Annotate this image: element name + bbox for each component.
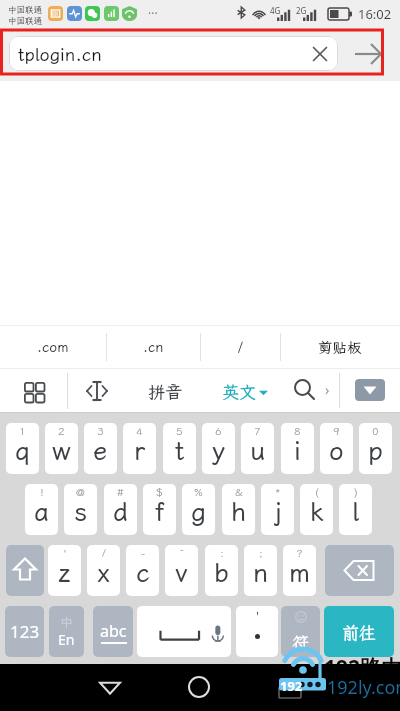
staticText: ( (315, 485, 319, 499)
button[interactable]: 4 (123, 423, 156, 474)
staticText: & (235, 485, 243, 499)
staticText: d (113, 494, 128, 528)
staticText: 3 (97, 424, 104, 438)
button[interactable]: 拼音 (148, 380, 182, 402)
staticText: u (250, 433, 266, 467)
staticText: 123 (10, 620, 40, 643)
button[interactable]: ¯ (165, 545, 198, 596)
button[interactable]: ? (283, 545, 316, 596)
staticText: ! (40, 485, 44, 499)
staticText: 9 (333, 424, 340, 438)
button[interactable]: * (261, 484, 294, 535)
button[interactable]: / (200, 326, 280, 368)
staticText: 中国联通 (8, 4, 43, 15)
staticText: tplogin.cn (18, 42, 102, 66)
staticText: 英文 (222, 380, 256, 402)
button[interactable]: Clear text (306, 40, 334, 68)
button[interactable]: 123 (5, 606, 44, 657)
staticText: En (58, 630, 75, 649)
staticText: 7 (254, 424, 261, 438)
button[interactable]: 9 (320, 423, 353, 474)
staticText: ? (296, 546, 303, 560)
staticText: t (175, 433, 185, 467)
staticText: - (141, 546, 145, 560)
staticText: 2G (296, 5, 307, 16)
staticText: * (275, 485, 281, 499)
button[interactable]: 中 (49, 606, 84, 657)
button[interactable]: / (87, 545, 120, 596)
staticText: 4G (270, 5, 281, 16)
button[interactable]: Punctuation (236, 606, 278, 657)
staticText: g (191, 494, 207, 528)
button[interactable]: Search (293, 378, 317, 402)
staticText: 192 (280, 677, 303, 695)
staticText: ' (63, 546, 67, 560)
button[interactable]: Home (188, 676, 210, 698)
button[interactable]: 6 (202, 423, 235, 474)
staticText: : (220, 546, 224, 560)
button[interactable]: Shift (6, 545, 44, 596)
staticText: y (212, 433, 226, 467)
button[interactable]: Backspace (325, 545, 394, 596)
staticText: 6 (215, 424, 222, 438)
button[interactable]: 5 (163, 423, 196, 474)
button[interactable]: 符 (281, 606, 320, 657)
staticText: x (97, 555, 111, 589)
button[interactable]: Go (352, 38, 384, 70)
staticText: q (15, 433, 30, 467)
button[interactable]: ) (339, 484, 372, 535)
button[interactable]: - (126, 545, 159, 596)
staticText: › (325, 380, 330, 399)
staticText: m (289, 555, 311, 589)
staticText: e (93, 433, 108, 467)
button[interactable]: .cn (106, 326, 200, 368)
button[interactable]: : (205, 545, 238, 596)
staticText: .cn (143, 338, 164, 356)
staticText: z (58, 555, 71, 589)
button[interactable]: 1 (6, 423, 39, 474)
button[interactable]: abc (93, 606, 133, 657)
staticText: n (253, 555, 269, 589)
staticText: ) (354, 485, 358, 499)
staticText: s (74, 494, 88, 528)
button[interactable]: ; (244, 545, 277, 596)
staticText: 0 (372, 424, 379, 438)
button[interactable]: & (222, 484, 255, 535)
staticText: w (52, 433, 71, 467)
staticText: 中 (61, 615, 73, 630)
button[interactable]: ( (300, 484, 333, 535)
button[interactable]: 剪贴板 (280, 326, 400, 368)
staticText: h (231, 494, 247, 528)
staticText: k (310, 494, 324, 528)
button[interactable]: 7 (241, 423, 274, 474)
staticText: 4 (136, 424, 143, 438)
button[interactable]: 0 (359, 423, 392, 474)
button[interactable]: 英文 (222, 380, 268, 402)
button[interactable]: Hide keyboard (355, 379, 385, 401)
staticText: 前往 (342, 621, 376, 643)
button[interactable]: ' (48, 545, 81, 596)
button[interactable]: tplogin.cn (9, 36, 338, 71)
button[interactable]: @ (64, 484, 97, 535)
button[interactable]: .com (0, 326, 106, 368)
button[interactable]: 前往 (324, 606, 394, 657)
button[interactable]: Space (137, 606, 231, 657)
button[interactable]: 3 (84, 423, 117, 474)
staticText: ' (256, 607, 259, 625)
button[interactable]: $ (143, 484, 176, 535)
button[interactable]: 2 (45, 423, 78, 474)
button[interactable]: # (104, 484, 137, 535)
staticText: 5 (176, 424, 183, 438)
staticText: # (117, 485, 124, 499)
button[interactable]: 8 (281, 423, 314, 474)
staticText: 8 (294, 424, 301, 438)
button[interactable]: % (182, 484, 215, 535)
button[interactable]: Move cursor (84, 378, 110, 404)
staticText: o (329, 433, 344, 467)
staticText: 1 (19, 424, 26, 438)
button[interactable]: ! (25, 484, 58, 535)
button[interactable]: Back (98, 675, 122, 699)
staticText: i (294, 433, 301, 467)
button[interactable]: Keyboard layout (24, 382, 43, 401)
staticText: ¯ (179, 546, 185, 560)
